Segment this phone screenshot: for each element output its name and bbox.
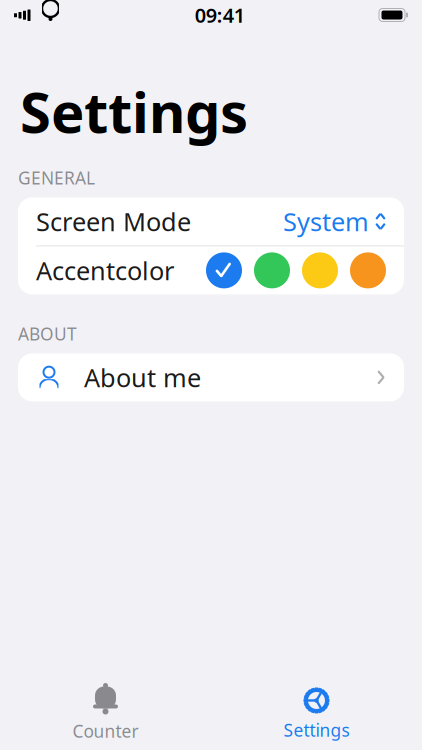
staticText: Accentcolor [36, 254, 174, 287]
button[interactable]: Counter [0, 684, 211, 744]
button[interactable]: Accent colour [254, 252, 290, 288]
staticText: Counter [72, 719, 138, 742]
staticText: About me [84, 361, 201, 394]
button[interactable]: Accent colour [302, 252, 338, 288]
button[interactable]: Accent colour [206, 252, 242, 288]
button[interactable]: Accent colour [350, 252, 386, 288]
button[interactable]: Screen Mode [18, 197, 404, 245]
staticText: 09:41 [195, 2, 245, 28]
staticText: Settings [283, 718, 349, 741]
staticText: System [283, 205, 369, 238]
staticText: ABOUT [18, 322, 77, 345]
staticText: Settings [20, 74, 248, 148]
staticText: GENERAL [18, 166, 95, 189]
button[interactable]: Settings [211, 684, 422, 744]
staticText: Screen Mode [36, 205, 191, 238]
button[interactable]: About me [18, 353, 404, 401]
